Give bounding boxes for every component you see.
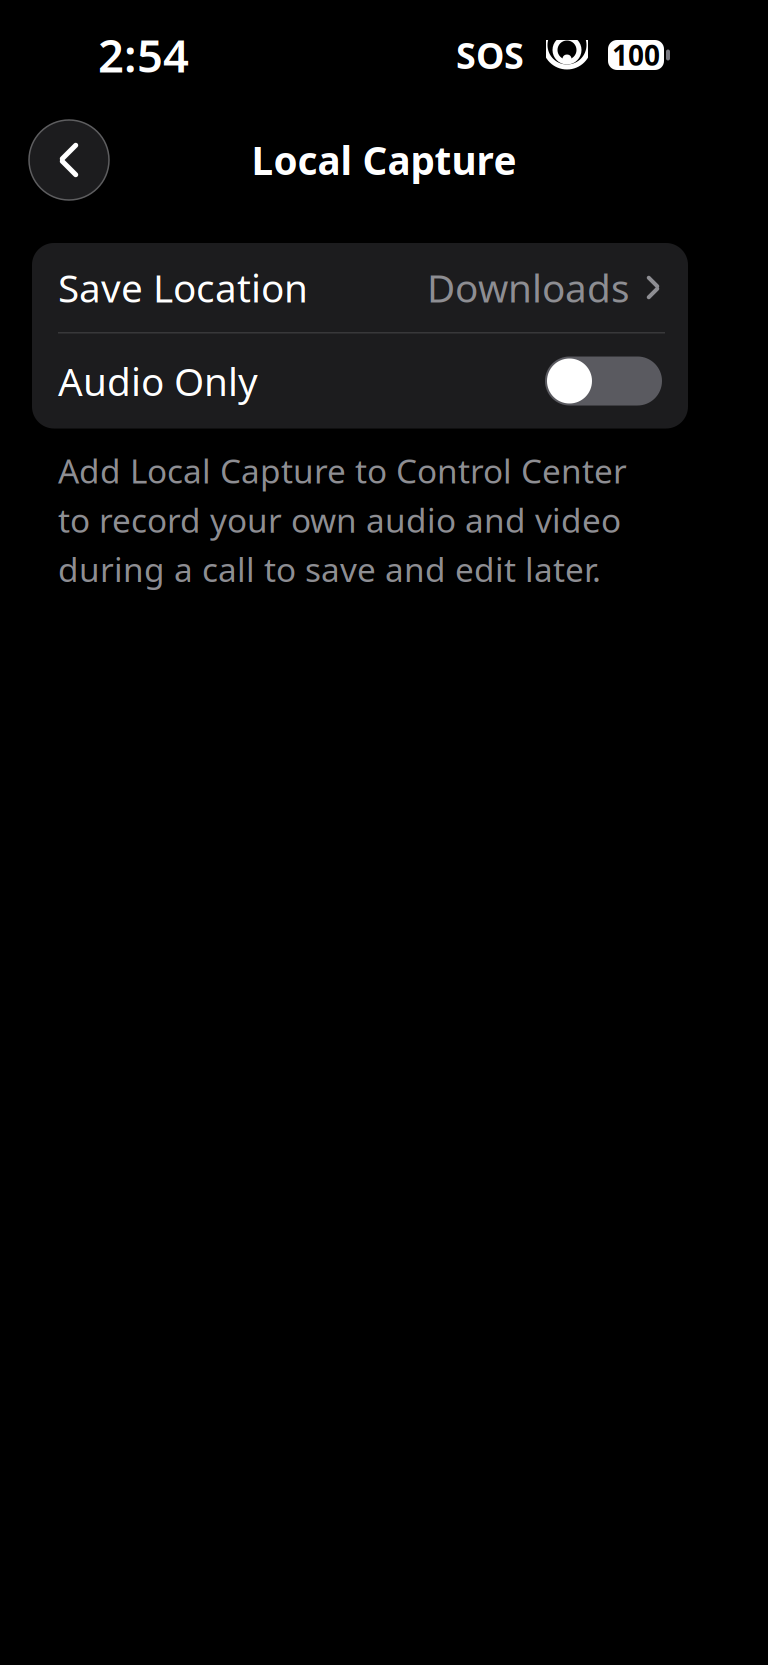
staticText: Audio Only — [58, 355, 258, 407]
button[interactable]: Save Location — [32, 243, 688, 332]
button[interactable]: Audio Only — [32, 333, 688, 428]
staticText: 100 — [612, 36, 660, 74]
staticText: SOS — [456, 31, 524, 79]
staticText: Save Location — [58, 262, 308, 313]
staticText: Add Local Capture to Control Center to r… — [58, 448, 627, 591]
staticText: Downloads — [427, 262, 630, 313]
button[interactable]: Back — [29, 120, 109, 200]
staticText: Local Capture — [251, 134, 516, 186]
staticText: 2:54 — [98, 25, 189, 85]
